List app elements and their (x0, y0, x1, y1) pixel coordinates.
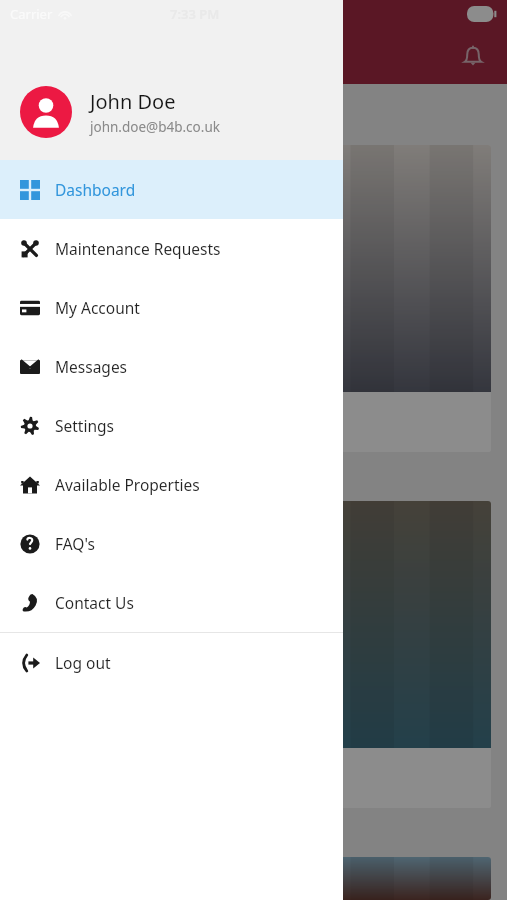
staticText: Messages (55, 356, 128, 377)
button[interactable]: Contact Us (0, 573, 343, 632)
staticText: Log out (55, 652, 111, 673)
staticText: john.doe@b4b.co.uk (90, 118, 220, 136)
staticText: Dashboard (55, 179, 136, 200)
button[interactable]: Log out (0, 633, 343, 692)
staticText: Maintenance Requests (55, 238, 221, 259)
staticText: Settings (55, 415, 114, 436)
button[interactable]: Available Properties (0, 455, 343, 514)
staticText: FAQ's (55, 533, 95, 554)
staticText: My Account (55, 297, 140, 318)
button[interactable]: Dashboard (0, 160, 343, 219)
button[interactable]: FAQ's (0, 514, 343, 573)
button[interactable]: Maintenance Requests (0, 219, 343, 278)
button[interactable]: Settings (0, 396, 343, 455)
button[interactable] (16, 857, 491, 900)
button[interactable]: My Account (0, 278, 343, 337)
button[interactable] (16, 501, 491, 808)
staticText: Contact Us (55, 592, 134, 613)
button[interactable]: Notifications (451, 34, 495, 78)
staticText: Available Properties (55, 474, 200, 495)
button[interactable] (16, 145, 491, 452)
button[interactable]: Messages (0, 337, 343, 396)
staticText: John Doe (90, 88, 176, 115)
